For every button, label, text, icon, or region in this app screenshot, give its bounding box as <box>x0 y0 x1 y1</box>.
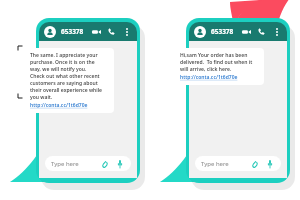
staticText: way, we will notify you. <box>30 66 87 73</box>
staticText: 653378 <box>211 27 234 36</box>
button[interactable]: Record voice message <box>265 159 275 169</box>
button[interactable]: http://conta.cc/1t6d70e <box>180 74 238 81</box>
button[interactable]: The same. I appreciate your <box>24 48 114 113</box>
staticText: their overall experience while <box>30 87 103 94</box>
button[interactable]: Attach file <box>100 159 110 169</box>
button[interactable]: Contact profile <box>44 26 56 38</box>
staticText: purchase. Once it is on the <box>30 59 95 66</box>
button[interactable]: Voice call <box>256 26 267 37</box>
button[interactable]: Video call <box>91 26 102 37</box>
staticText: Type here <box>201 160 229 168</box>
button[interactable]: Attach file <box>250 159 260 169</box>
button[interactable]: Record voice message <box>115 159 125 169</box>
staticText: Check out what other recent <box>30 73 100 80</box>
staticText: delivered. To find out when it <box>180 59 253 66</box>
staticText: will arrive, click here. <box>180 66 232 73</box>
button[interactable]: Type here <box>45 156 131 171</box>
staticText: you wait. <box>30 94 53 101</box>
button[interactable]: More options <box>121 26 132 37</box>
staticText: 653378 <box>61 27 84 36</box>
button[interactable]: More options <box>271 26 282 37</box>
staticText: customers are saying about <box>30 80 98 87</box>
staticText: Type here <box>51 160 79 168</box>
button[interactable]: Hi,sam Your order has been <box>174 48 264 85</box>
button[interactable]: Type here <box>195 156 281 171</box>
staticText: The same. I appreciate your <box>30 52 98 59</box>
button[interactable]: Video call <box>241 26 252 37</box>
button[interactable]: Voice call <box>106 26 117 37</box>
button[interactable]: http://conta.cc/1t6d70e <box>30 102 88 109</box>
button[interactable]: Contact profile <box>194 26 206 38</box>
staticText: Hi,sam Your order has been <box>180 52 248 59</box>
